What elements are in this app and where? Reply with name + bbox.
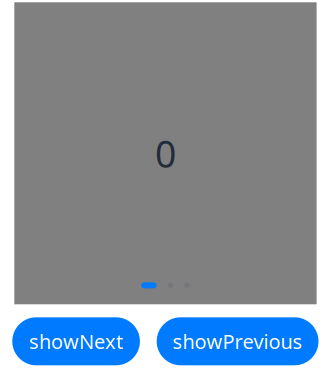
button[interactable]: showNext [12,317,140,365]
staticText: 0 [155,128,176,178]
button[interactable]: showPrevious [157,317,318,365]
button[interactable]: Page 1 of 3 [141,282,190,288]
staticText: showNext [29,328,123,355]
staticText: showPrevious [173,328,303,355]
